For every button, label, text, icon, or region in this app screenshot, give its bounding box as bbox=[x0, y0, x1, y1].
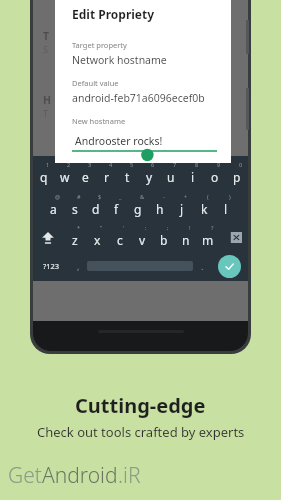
staticText: q bbox=[40, 169, 48, 185]
staticText: ! bbox=[189, 224, 191, 231]
button[interactable]: : bbox=[131, 222, 153, 253]
staticText: n bbox=[182, 232, 190, 248]
staticText: Get bbox=[8, 461, 42, 490]
button[interactable]: Shift bbox=[33, 222, 63, 253]
button[interactable]: ?123 bbox=[33, 253, 69, 279]
button[interactable]: _ bbox=[106, 191, 127, 222]
staticText: f bbox=[114, 201, 119, 217]
button[interactable]: + bbox=[171, 191, 193, 222]
button[interactable]: & bbox=[127, 191, 149, 222]
button[interactable]: . bbox=[193, 253, 211, 279]
staticText: , bbox=[77, 260, 80, 272]
staticText: S bbox=[43, 43, 48, 55]
button[interactable]: 7 bbox=[160, 159, 182, 191]
button[interactable]: 1 bbox=[33, 159, 54, 191]
button[interactable]: " bbox=[86, 222, 109, 253]
staticText: 8 bbox=[195, 161, 199, 168]
staticText: @ bbox=[55, 193, 60, 200]
button[interactable]: 6 bbox=[138, 159, 160, 191]
staticText: Check out tools crafted by experts bbox=[37, 423, 245, 441]
button[interactable]: 0 bbox=[226, 159, 248, 191]
staticText: ? bbox=[211, 224, 214, 231]
button[interactable]: - bbox=[149, 191, 171, 222]
button[interactable]: * bbox=[63, 222, 86, 253]
staticText: Androoster rocks! bbox=[75, 134, 163, 148]
staticText: c bbox=[117, 232, 123, 248]
staticText: Cutting-edge bbox=[75, 392, 206, 419]
staticText: New hostname bbox=[72, 116, 126, 126]
button[interactable]: 9 bbox=[204, 159, 226, 191]
staticText: 5 bbox=[130, 161, 134, 168]
staticText: 3 bbox=[88, 161, 92, 168]
button[interactable]: ( bbox=[193, 191, 215, 222]
staticText: Android bbox=[42, 461, 118, 490]
button[interactable]: 5 bbox=[117, 159, 138, 191]
staticText: ' bbox=[123, 224, 125, 231]
staticText: d bbox=[92, 201, 100, 217]
staticText: * bbox=[77, 224, 81, 231]
button[interactable]: H bbox=[43, 93, 238, 119]
staticText: Default value bbox=[72, 78, 119, 88]
staticText: y bbox=[146, 169, 153, 185]
staticText: H bbox=[43, 93, 52, 107]
staticText: + bbox=[184, 193, 188, 200]
staticText: 1 bbox=[46, 161, 50, 168]
staticText: ?123 bbox=[43, 261, 60, 271]
staticText: Signal tweaks bbox=[43, 153, 116, 167]
button[interactable]: ' bbox=[109, 222, 131, 253]
staticText: " bbox=[100, 224, 103, 231]
staticText: ; bbox=[167, 224, 169, 231]
staticText: $ bbox=[98, 193, 102, 200]
button[interactable]: 8 bbox=[182, 159, 204, 191]
staticText: t bbox=[125, 169, 130, 185]
staticText: v bbox=[139, 232, 146, 248]
staticText: k bbox=[201, 201, 208, 217]
button[interactable]: 3 bbox=[75, 159, 96, 191]
staticText: 2 bbox=[67, 161, 71, 168]
staticText: w bbox=[60, 169, 70, 185]
staticText: o bbox=[211, 169, 219, 185]
staticText: x bbox=[94, 232, 101, 248]
staticText: ( bbox=[207, 193, 209, 200]
staticText: l bbox=[224, 201, 228, 217]
staticText: # bbox=[77, 193, 81, 200]
button[interactable]: T bbox=[43, 29, 238, 55]
staticText: z bbox=[72, 232, 78, 248]
staticText: Edit Propriety bbox=[72, 6, 155, 22]
staticText: . bbox=[201, 260, 204, 272]
staticText: .iR bbox=[118, 461, 141, 490]
button[interactable]: ; bbox=[153, 222, 175, 253]
button[interactable]: 2 bbox=[54, 159, 75, 191]
button[interactable]: Backspace bbox=[219, 222, 248, 253]
button[interactable]: $ bbox=[85, 191, 106, 222]
button[interactable]: @ bbox=[43, 191, 64, 222]
button[interactable]: , bbox=[69, 253, 87, 279]
staticText: T bbox=[43, 107, 49, 119]
staticText: - bbox=[163, 193, 165, 200]
staticText: Maximize signal detection and usability bbox=[43, 169, 210, 181]
staticText: 9 bbox=[217, 161, 221, 168]
button[interactable]: 4 bbox=[96, 159, 117, 191]
staticText: & bbox=[140, 193, 145, 200]
staticText: p bbox=[233, 169, 241, 185]
staticText: Target property bbox=[72, 40, 127, 50]
staticText: _ bbox=[119, 193, 122, 200]
button[interactable]: ) bbox=[215, 191, 237, 222]
staticText: 6 bbox=[151, 161, 155, 168]
staticText: Network hostname bbox=[72, 53, 167, 67]
staticText: 0 bbox=[239, 161, 243, 168]
staticText: u bbox=[167, 169, 175, 185]
staticText: 7 bbox=[173, 161, 177, 168]
button[interactable]: # bbox=[64, 191, 85, 222]
staticText: a bbox=[50, 201, 57, 217]
button[interactable]: ! bbox=[175, 222, 197, 253]
staticText: 4 bbox=[109, 161, 113, 168]
staticText: r bbox=[104, 169, 109, 185]
staticText: e bbox=[82, 169, 89, 185]
staticText: g bbox=[134, 201, 142, 217]
staticText: ) bbox=[229, 193, 231, 200]
button[interactable]: Enter bbox=[218, 255, 241, 278]
staticText: : bbox=[145, 224, 147, 231]
button[interactable]: ? bbox=[197, 222, 219, 253]
